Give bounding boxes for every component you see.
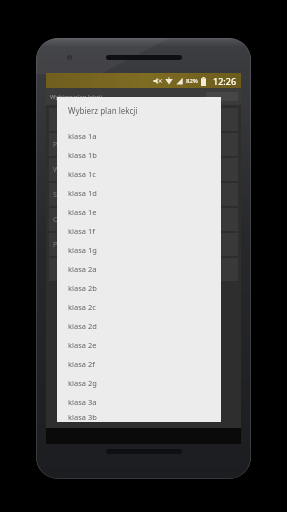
- button[interactable]: klasa 2a: [57, 259, 221, 278]
- button[interactable]: klasa 1a: [57, 126, 221, 145]
- staticText: klasa 2c: [68, 302, 96, 312]
- button[interactable]: [49, 258, 238, 281]
- staticText: 82%: [186, 77, 198, 85]
- button[interactable]: klasa 2b: [57, 278, 221, 297]
- button[interactable]: klasa 2g: [57, 373, 221, 392]
- button[interactable]: klasa 1d: [57, 183, 221, 202]
- staticText: P: [53, 240, 58, 250]
- staticText: S: [53, 190, 57, 200]
- staticText: klasa 1g: [68, 245, 97, 255]
- staticText: 12:26: [213, 75, 237, 87]
- staticText: klasa 3a: [68, 397, 97, 407]
- staticText: klasa 1c: [68, 169, 96, 179]
- button[interactable]: klasa 3a: [57, 392, 221, 411]
- button[interactable]: klasa 1b: [57, 145, 221, 164]
- button[interactable]: [49, 108, 238, 131]
- button[interactable]: klasa 2d: [57, 316, 221, 335]
- staticText: klasa 1d: [68, 188, 97, 198]
- button[interactable]: klasa 1f: [57, 221, 221, 240]
- staticText: Wybierz plan lekcji: [50, 93, 103, 101]
- button[interactable]: klasa 1c: [57, 164, 221, 183]
- button[interactable]: klasa 1g: [57, 240, 221, 259]
- button[interactable]: klasa 2e: [57, 335, 221, 354]
- staticText: klasa 2g: [68, 378, 97, 388]
- button[interactable]: klasa 2c: [57, 297, 221, 316]
- button[interactable]: S: [49, 183, 238, 206]
- staticText: klasa 2d: [68, 321, 97, 331]
- staticText: Wybierz plan lekcji: [68, 105, 138, 116]
- staticText: klasa 1e: [68, 207, 97, 217]
- staticText: C: [53, 215, 58, 225]
- staticText: klasa 2b: [68, 283, 97, 293]
- button[interactable]: Spinner: [206, 92, 238, 101]
- staticText: klasa 1f: [68, 226, 95, 236]
- staticText: klasa 1a: [68, 131, 97, 141]
- staticText: klasa 2e: [68, 340, 97, 350]
- staticText: P: [53, 140, 58, 150]
- button[interactable]: klasa 3b: [57, 411, 221, 422]
- button[interactable]: P: [49, 233, 238, 256]
- staticText: klasa 2a: [68, 264, 97, 274]
- staticText: klasa 1b: [68, 150, 97, 160]
- button[interactable]: C: [49, 208, 238, 231]
- staticText: klasa 2f: [68, 359, 95, 369]
- staticText: W: [53, 165, 60, 175]
- button[interactable]: klasa 1e: [57, 202, 221, 221]
- staticText: klasa 3b: [68, 412, 97, 422]
- button[interactable]: P: [49, 133, 238, 156]
- button[interactable]: W: [49, 158, 238, 181]
- button[interactable]: klasa 2f: [57, 354, 221, 373]
